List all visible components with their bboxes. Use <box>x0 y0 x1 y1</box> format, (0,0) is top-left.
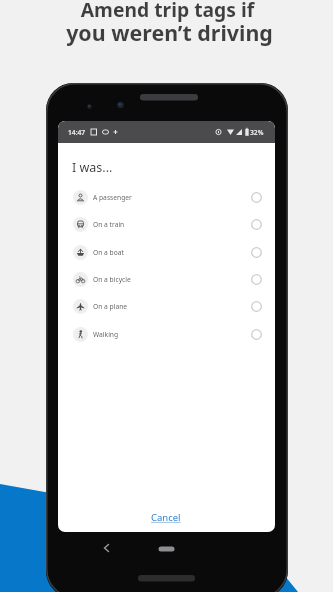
button[interactable]: On a boat <box>58 239 275 266</box>
staticText: On a bicycle <box>93 275 131 284</box>
staticText: I was... <box>72 159 113 176</box>
staticText: On a train <box>93 220 125 229</box>
staticText: On a boat <box>93 248 124 257</box>
button[interactable]: A passenger <box>58 184 275 211</box>
staticText: 32% <box>250 128 264 137</box>
staticText: On a plane <box>93 302 128 311</box>
staticText: 14:47 <box>68 128 86 137</box>
staticText: you weren’t driving <box>3 18 333 47</box>
button[interactable]: On a bicycle <box>58 266 275 293</box>
staticText: A passenger <box>93 193 132 202</box>
staticText: Cancel <box>151 511 181 524</box>
staticText: Walking <box>93 330 119 339</box>
button[interactable]: On a train <box>58 211 275 238</box>
staticText: Amend trip tags if <box>1 0 333 22</box>
button[interactable]: Cancel <box>133 508 199 526</box>
button[interactable]: Walking <box>58 321 275 348</box>
button[interactable]: On a plane <box>58 293 275 320</box>
